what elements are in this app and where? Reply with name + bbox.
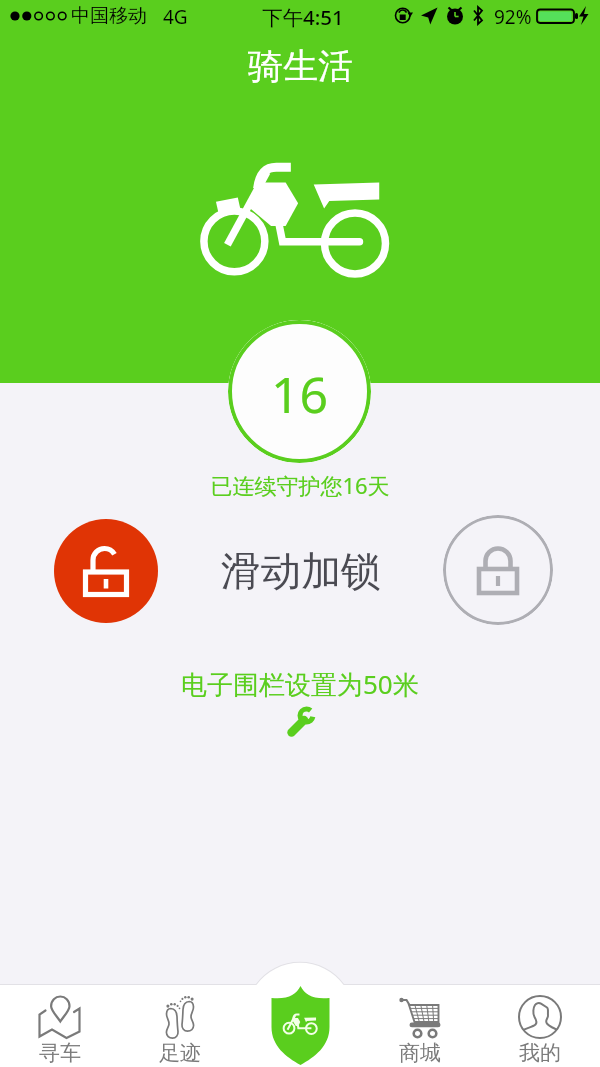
staticText: 寻车	[39, 1040, 81, 1066]
staticText: 足迹	[159, 1040, 201, 1066]
button[interactable]: 足迹	[120, 985, 240, 1067]
staticText: 16	[271, 360, 329, 428]
staticText: 已连续守护您16天	[0, 470, 600, 500]
staticText: 我的	[519, 1040, 561, 1066]
staticText: 中国移动	[71, 4, 147, 28]
staticText: 4G	[163, 4, 188, 30]
staticText: 电子围栏设置为50米	[181, 666, 419, 702]
button[interactable]: 我的	[480, 985, 600, 1067]
button[interactable]: 商城	[360, 985, 480, 1067]
button[interactable]: 电子围栏设置为50米	[0, 666, 600, 738]
button[interactable]: 寻车	[0, 985, 120, 1067]
button[interactable]: Unlock	[54, 519, 158, 623]
staticText: 商城	[399, 1040, 441, 1066]
button[interactable]: Lock	[443, 515, 553, 625]
staticText: 92%	[494, 4, 532, 30]
button[interactable]: Ride	[271, 986, 330, 1065]
staticText: 下午4:51	[262, 3, 344, 31]
staticText: 滑动加锁	[221, 546, 381, 596]
staticText: 骑生活	[248, 44, 353, 88]
